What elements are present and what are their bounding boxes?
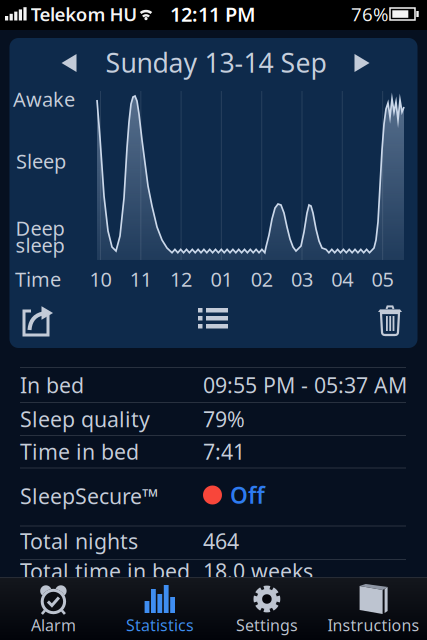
- staticText: sleep: [15, 232, 64, 258]
- staticText: Alarm: [31, 614, 76, 636]
- staticText: 05: [372, 266, 394, 292]
- staticText: SleepSecure™: [20, 482, 158, 510]
- button[interactable]: Previous night: [47, 41, 91, 85]
- staticText: 09:55 PM - 05:37 AM: [203, 371, 407, 399]
- staticText: 04: [331, 266, 353, 292]
- staticText: Telekom HU: [31, 2, 137, 26]
- button[interactable]: Next night: [340, 41, 384, 85]
- staticText: In bed: [20, 371, 84, 399]
- staticText: Total time in bed: [20, 557, 190, 585]
- staticText: 7:41: [203, 437, 245, 466]
- staticText: Sleep: [16, 148, 66, 174]
- staticText: 01: [210, 266, 232, 292]
- staticText: 02: [251, 266, 273, 292]
- button[interactable]: Instructions: [321, 577, 427, 640]
- staticText: 10: [89, 266, 111, 292]
- button[interactable]: Alarm: [0, 577, 106, 640]
- button[interactable]: Delete night: [378, 305, 402, 335]
- staticText: Awake: [13, 86, 75, 112]
- button[interactable]: Share: [22, 303, 58, 337]
- staticText: 18.0 weeks: [203, 557, 313, 585]
- staticText: 464: [203, 527, 239, 555]
- staticText: 76%: [351, 2, 389, 26]
- staticText: Sunday 13-14 Sep: [105, 45, 326, 80]
- staticText: Off: [230, 480, 265, 510]
- button[interactable]: Notes: [198, 308, 228, 332]
- staticText: Sleep quality: [20, 405, 150, 433]
- staticText: 12: [170, 266, 192, 292]
- staticText: Total nights: [20, 527, 138, 555]
- staticText: 79%: [203, 405, 245, 433]
- button[interactable]: Settings: [214, 577, 320, 640]
- staticText: Instructions: [328, 614, 420, 636]
- staticText: Time in bed: [20, 437, 139, 466]
- button[interactable]: Statistics: [107, 577, 213, 640]
- staticText: Time: [15, 266, 61, 292]
- staticText: 03: [291, 266, 313, 292]
- staticText: Settings: [236, 614, 298, 636]
- staticText: 11: [130, 266, 152, 292]
- staticText: 12:11 PM: [170, 1, 256, 27]
- staticText: Deep: [15, 215, 64, 241]
- staticText: Statistics: [126, 614, 194, 636]
